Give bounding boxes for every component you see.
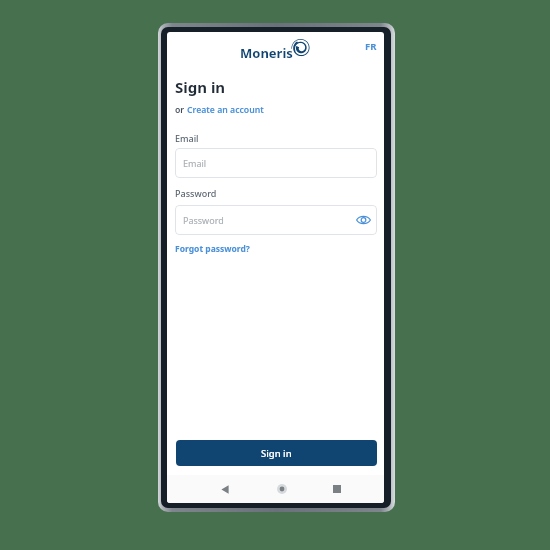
staticText: Create an account <box>187 104 264 116</box>
staticText: or <box>175 104 187 116</box>
button[interactable]: Password <box>175 205 377 235</box>
staticText: Sign in <box>261 447 292 460</box>
staticText: Sign in <box>175 77 226 97</box>
button[interactable]: Email <box>175 148 377 178</box>
staticText: FR <box>365 40 377 53</box>
button[interactable]: Create an account <box>187 104 264 116</box>
staticText: Password <box>183 214 224 226</box>
staticText: Moneris <box>240 44 293 62</box>
button[interactable]: Recent apps <box>325 477 349 501</box>
button[interactable]: Forgot password? <box>175 243 250 255</box>
staticText: Forgot password? <box>175 243 250 255</box>
staticText: Email <box>183 157 207 169</box>
button[interactable]: Home <box>270 477 294 501</box>
button[interactable]: Show password <box>356 214 371 226</box>
button[interactable]: Back <box>213 477 237 501</box>
staticText: Email <box>175 132 199 144</box>
staticText: Password <box>175 187 217 199</box>
button[interactable]: Sign in <box>176 440 377 466</box>
button[interactable]: FR <box>361 36 381 57</box>
